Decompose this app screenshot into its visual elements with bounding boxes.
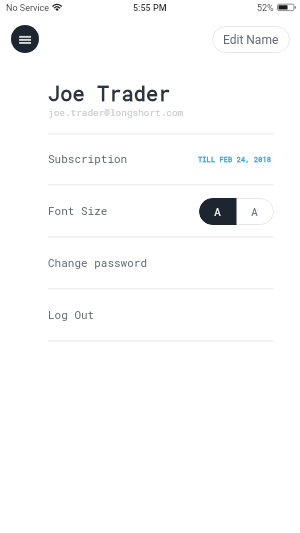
staticText: Font Size [48, 203, 108, 218]
staticText: A [214, 204, 221, 219]
staticText: 5:55 PM [133, 3, 167, 14]
staticText: No Service [6, 3, 50, 14]
staticText: Edit Name [223, 33, 279, 47]
staticText: Log Out [48, 307, 95, 322]
staticText: Subscription [48, 151, 128, 166]
button[interactable]: Subscription [0, 133, 300, 184]
other: Wi-Fi [53, 3, 62, 11]
button[interactable]: Font Size [0, 184, 300, 236]
button[interactable]: A [199, 198, 236, 225]
staticText: joe.trader@longshort.com [48, 106, 184, 118]
button[interactable]: A [236, 198, 273, 225]
staticText: TILL FEB 24, 2018 [198, 155, 272, 164]
button[interactable]: Change password [0, 236, 300, 288]
staticText: A [251, 204, 258, 219]
staticText: Change password [48, 255, 148, 270]
button[interactable]: Edit Name [212, 26, 290, 53]
other: Battery 52 percent [277, 3, 297, 12]
button[interactable]: Open navigation menu [11, 25, 39, 53]
button[interactable]: Log Out [0, 288, 300, 340]
staticText: 52% [257, 3, 274, 14]
staticText: Joe Trader [48, 80, 171, 107]
